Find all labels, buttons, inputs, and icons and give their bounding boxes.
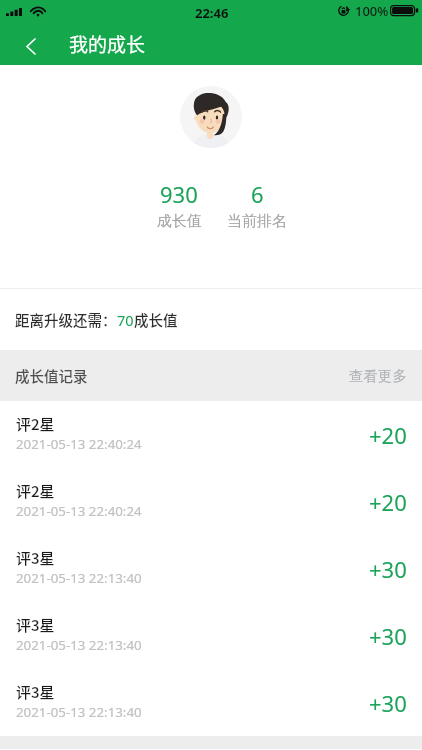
staticText: +20: [369, 420, 407, 450]
staticText: 930: [160, 179, 198, 203]
button[interactable]: Avatar: [180, 86, 242, 148]
button[interactable]: Back: [0, 22, 54, 65]
staticText: 70: [117, 310, 134, 330]
staticText: 2021-05-13 22:40:24: [16, 435, 142, 453]
button[interactable]: 评2星: [0, 401, 422, 468]
staticText: 2021-05-13 22:40:24: [16, 502, 142, 520]
staticText: 评2星: [16, 480, 55, 502]
staticText: 距离升级还需：: [15, 309, 117, 330]
button[interactable]: 评3星: [0, 669, 422, 736]
button[interactable]: 评2星: [0, 468, 422, 535]
staticText: 评3星: [16, 547, 55, 569]
button[interactable]: 查看更多: [334, 350, 422, 401]
staticText: 100%: [355, 2, 389, 20]
staticText: +20: [369, 487, 407, 517]
button[interactable]: 评3星: [0, 535, 422, 602]
staticText: +30: [369, 688, 407, 718]
staticText: +30: [369, 621, 407, 651]
staticText: 成长值: [134, 309, 178, 330]
staticText: 2021-05-13 22:13:40: [16, 569, 142, 587]
staticText: 22:46: [195, 4, 229, 22]
staticText: 评3星: [16, 681, 55, 703]
staticText: 评3星: [16, 614, 55, 636]
staticText: 6: [251, 179, 264, 203]
staticText: 当前排名: [227, 212, 287, 231]
staticText: 成长值: [157, 212, 202, 231]
staticText: 查看更多: [349, 367, 407, 385]
staticText: 成长值记录: [15, 365, 88, 386]
button[interactable]: 评3星: [0, 602, 422, 669]
staticText: +30: [369, 554, 407, 584]
staticText: 我的成长: [69, 30, 146, 58]
staticText: 2021-05-13 22:13:40: [16, 703, 142, 721]
staticText: 2021-05-13 22:13:40: [16, 636, 142, 654]
staticText: 评2星: [16, 413, 55, 435]
